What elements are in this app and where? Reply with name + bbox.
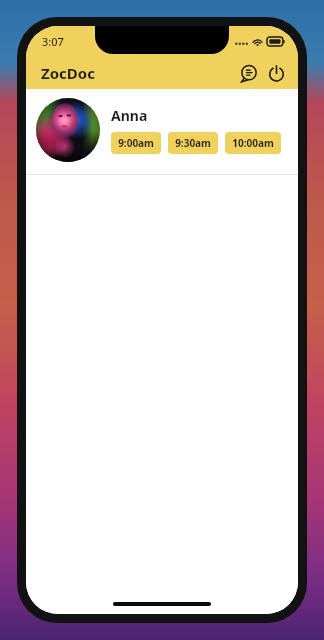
- button[interactable]: Messages: [237, 61, 261, 85]
- staticText: ZocDoc: [41, 63, 95, 83]
- staticText: 9:00am: [118, 136, 154, 150]
- staticText: 10:00am: [232, 136, 274, 150]
- button[interactable]: 10:00am: [225, 132, 281, 154]
- staticText: Anna: [111, 106, 148, 125]
- button[interactable]: 9:30am: [168, 132, 218, 154]
- button[interactable]: 9:00am: [111, 132, 161, 154]
- button[interactable]: Anna: [26, 89, 298, 174]
- staticText: 9:30am: [175, 136, 211, 150]
- button[interactable]: Power: [264, 61, 288, 85]
- staticText: 3:07: [42, 34, 64, 49]
